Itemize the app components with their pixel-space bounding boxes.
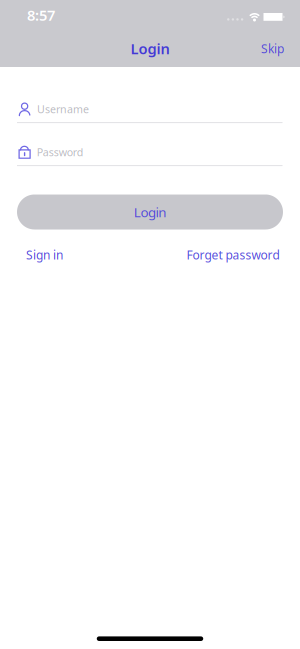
staticText: Password: [37, 145, 84, 159]
button[interactable]: Sign in: [26, 247, 63, 263]
staticText: Username: [37, 102, 89, 116]
button[interactable]: Forget password: [186, 247, 279, 263]
staticText: Skip: [261, 40, 284, 56]
button[interactable]: Skip: [261, 40, 284, 56]
staticText: Login: [134, 203, 166, 221]
navigationBar: Login: [0, 30, 300, 67]
secureTextField[interactable]: Password: [0, 145, 300, 159]
staticText: Sign in: [26, 247, 63, 263]
textField[interactable]: Username: [0, 102, 300, 116]
staticText: Login: [130, 39, 169, 58]
staticText: Forget password: [186, 247, 279, 263]
button[interactable]: Login: [17, 194, 283, 229]
staticText: 8:57: [27, 5, 55, 25]
